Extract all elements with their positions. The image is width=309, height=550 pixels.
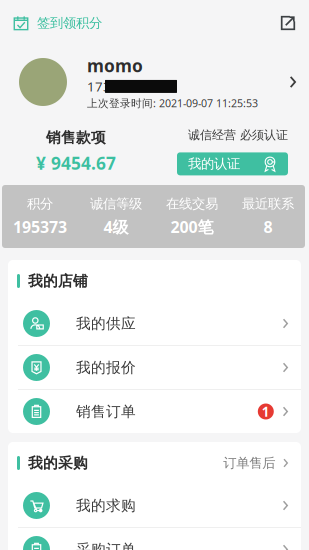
staticText: 上次登录时间: 2021-09-07 11:25:53 — [87, 96, 258, 110]
button[interactable]: 我的求购 — [8, 484, 301, 528]
staticText: 1 — [262, 403, 270, 420]
button[interactable]: 我的供应 — [8, 302, 301, 346]
button[interactable]: Share — [270, 6, 309, 40]
staticText: 诚信等级 — [90, 196, 142, 212]
button[interactable]: 订单售后 — [223, 449, 301, 477]
button[interactable]: 销售订单 — [8, 390, 301, 433]
staticText: 签到领积分 — [37, 15, 102, 31]
staticText: 采购订单 — [76, 540, 136, 550]
staticText: 销售订单 — [76, 402, 136, 420]
staticText: ¥ 9454.67 — [36, 151, 116, 174]
staticText: 诚信经营 必须认证 — [188, 128, 288, 142]
button[interactable]: 我的认证 — [177, 152, 288, 175]
staticText: 200笔 — [170, 216, 213, 237]
staticText: 我的求购 — [76, 496, 136, 514]
button[interactable]: 采购订单 — [8, 528, 301, 550]
staticText: 8 — [263, 216, 272, 237]
staticText: 销售款项 — [46, 128, 106, 146]
staticText: 我的采购 — [28, 454, 88, 472]
staticText: 在线交易 — [166, 196, 218, 212]
staticText: 最近联系 — [242, 196, 294, 212]
staticText: 195373 — [13, 216, 67, 237]
staticText: 我的认证 — [188, 156, 240, 172]
staticText: 我的供应 — [76, 314, 136, 332]
staticText: 4级 — [103, 216, 128, 237]
staticText: momo — [87, 54, 143, 77]
staticText: 173 — [87, 78, 111, 95]
staticText: 积分 — [27, 196, 53, 212]
button[interactable]: momo — [0, 46, 309, 118]
staticText: 我的报价 — [76, 358, 136, 376]
button[interactable]: 我的报价 — [8, 346, 301, 390]
staticText: 订单售后 — [223, 455, 275, 471]
button[interactable]: 签到领积分 — [0, 6, 110, 40]
staticText: 我的店铺 — [28, 272, 88, 290]
